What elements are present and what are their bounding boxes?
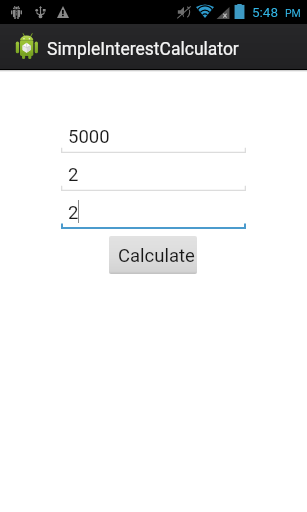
button[interactable]: 5000: [61, 125, 246, 153]
other: Warning: [57, 6, 69, 18]
other: Ringer silent: [177, 5, 191, 19]
button[interactable]: 2: [61, 201, 246, 229]
staticText: 5000: [68, 126, 110, 148]
other: Battery full: [234, 4, 245, 19]
staticText: 5:48: [252, 4, 279, 20]
staticText: SimpleInterestCalculator: [47, 39, 239, 60]
staticText: 2: [68, 164, 79, 186]
other: Wi-Fi: [196, 4, 214, 18]
other: USB connected: [36, 6, 45, 18]
staticText: PM: [285, 7, 301, 19]
staticText: Calculate: [118, 245, 195, 267]
staticText: 2: [68, 202, 79, 224]
other: No mobile signal: [216, 5, 230, 20]
button[interactable]: 2: [61, 163, 246, 191]
other: USB debugging: [11, 6, 22, 19]
button[interactable]: Calculate: [109, 236, 197, 274]
